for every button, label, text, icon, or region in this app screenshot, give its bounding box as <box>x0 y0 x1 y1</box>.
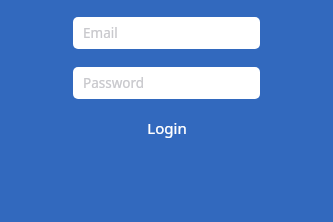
button[interactable]: Password <box>73 67 260 99</box>
staticText: Password <box>83 74 145 92</box>
button[interactable]: Email <box>73 17 260 49</box>
button[interactable]: Login <box>135 116 199 140</box>
staticText: Login <box>147 118 187 138</box>
staticText: Email <box>83 24 118 42</box>
